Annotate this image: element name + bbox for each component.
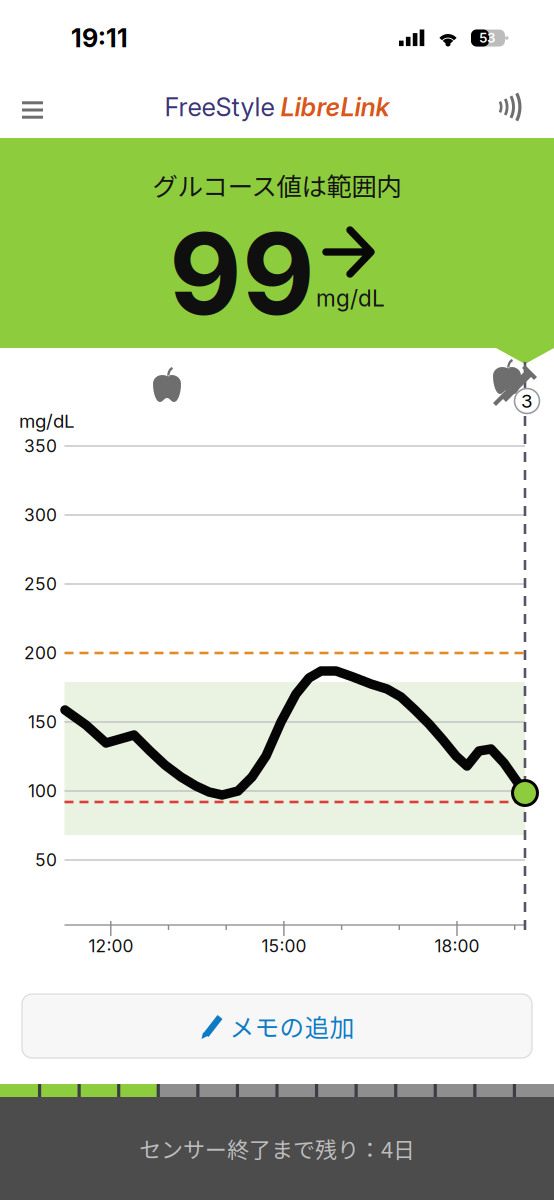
staticText: FreeStyle bbox=[164, 92, 274, 122]
button[interactable]: Menu bbox=[10, 83, 55, 131]
button[interactable]: Food log bbox=[150, 366, 184, 404]
staticText: メモの追加 bbox=[229, 1008, 354, 1044]
staticText: 150 bbox=[28, 711, 57, 732]
staticText: 18:00 bbox=[434, 935, 479, 956]
staticText: mg/dL bbox=[316, 285, 385, 312]
staticText: 50 bbox=[35, 849, 57, 870]
staticText: 3 bbox=[521, 390, 533, 412]
button[interactable]: Notes, 3 entries bbox=[492, 360, 548, 416]
staticText: 250 bbox=[24, 573, 57, 594]
staticText: 53 bbox=[479, 30, 495, 46]
staticText: 12:00 bbox=[88, 935, 133, 956]
staticText: 19:11 bbox=[71, 23, 128, 53]
staticText: 15:00 bbox=[261, 935, 306, 956]
staticText: グルコース値は範囲内 bbox=[152, 167, 401, 203]
staticText: センサー終了まで残り：4日 bbox=[139, 1133, 415, 1164]
staticText: LibreLink bbox=[280, 92, 389, 122]
button[interactable]: メモの追加 bbox=[22, 994, 532, 1058]
staticText: 350 bbox=[24, 435, 57, 456]
button[interactable]: Scan sensor bbox=[488, 84, 534, 130]
staticText: mg/dL bbox=[19, 410, 75, 432]
staticText: 200 bbox=[24, 642, 57, 663]
staticText: 100 bbox=[28, 780, 57, 801]
staticText: 300 bbox=[24, 504, 57, 525]
staticText: 99 bbox=[169, 206, 315, 341]
